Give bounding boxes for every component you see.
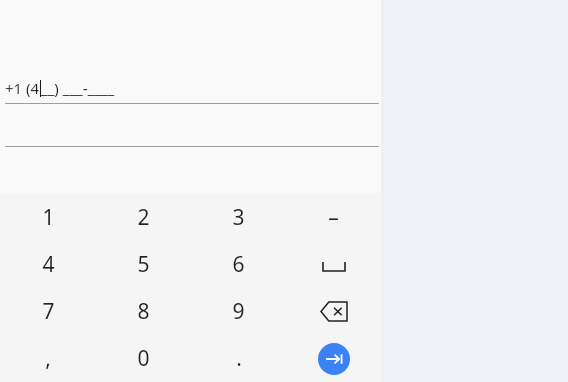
button[interactable]: 5 xyxy=(96,241,191,288)
button[interactable]: +1 (4 xyxy=(5,78,115,98)
button[interactable]: , xyxy=(0,335,96,382)
button[interactable]: 8 xyxy=(96,288,191,335)
button[interactable]: . xyxy=(191,335,286,382)
staticText: 3 xyxy=(232,203,245,232)
staticText: , xyxy=(45,344,51,373)
button[interactable]: 2 xyxy=(96,193,191,241)
button[interactable]: Next xyxy=(286,335,381,382)
staticText: __) ___-____ xyxy=(41,78,115,98)
button[interactable]: 1 xyxy=(0,193,96,241)
staticText: 1 xyxy=(42,203,55,232)
button[interactable]: 9 xyxy=(191,288,286,335)
staticText: 7 xyxy=(42,297,55,326)
staticText: 9 xyxy=(232,297,245,326)
staticText: 2 xyxy=(137,203,150,232)
button[interactable]: 3 xyxy=(191,193,286,241)
button[interactable]: Backspace xyxy=(286,288,381,335)
button[interactable]: 4 xyxy=(0,241,96,288)
staticText: . xyxy=(236,344,242,373)
button[interactable]: 7 xyxy=(0,288,96,335)
staticText: 8 xyxy=(137,297,150,326)
staticText: 0 xyxy=(137,344,150,373)
staticText: +1 (4 xyxy=(5,78,40,98)
button[interactable]: 6 xyxy=(191,241,286,288)
button[interactable]: – xyxy=(286,193,381,241)
staticText: 4 xyxy=(42,250,55,279)
button[interactable]: 0 xyxy=(96,335,191,382)
button[interactable]: Space xyxy=(286,241,381,288)
staticText: 5 xyxy=(137,250,150,279)
staticText: – xyxy=(328,203,339,232)
staticText: 6 xyxy=(232,250,245,279)
